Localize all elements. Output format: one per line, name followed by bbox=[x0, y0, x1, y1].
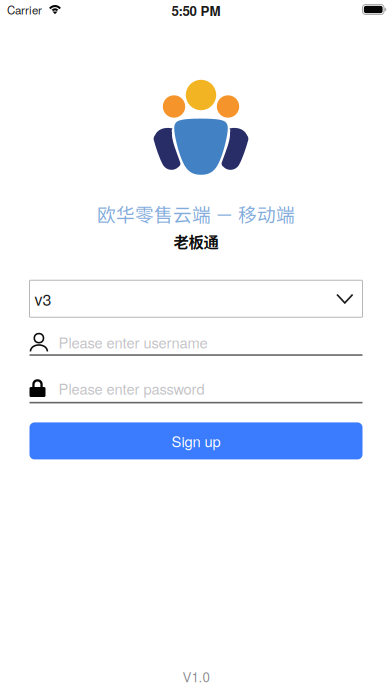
staticText: Sign up bbox=[171, 430, 220, 451]
staticText: v3 bbox=[34, 287, 51, 310]
staticText: 欧华零售云端 － 移动端 bbox=[97, 200, 295, 227]
staticText: Please enter username bbox=[58, 332, 207, 353]
staticText: 5:50 PM bbox=[171, 1, 220, 20]
staticText: V1.0 bbox=[182, 667, 209, 686]
button[interactable]: Sign up bbox=[29, 422, 362, 459]
staticText: 老板通 bbox=[173, 230, 218, 252]
staticText: Carrier bbox=[7, 1, 42, 18]
staticText: Please enter password bbox=[58, 378, 204, 399]
button[interactable]: v3 bbox=[29, 280, 362, 317]
